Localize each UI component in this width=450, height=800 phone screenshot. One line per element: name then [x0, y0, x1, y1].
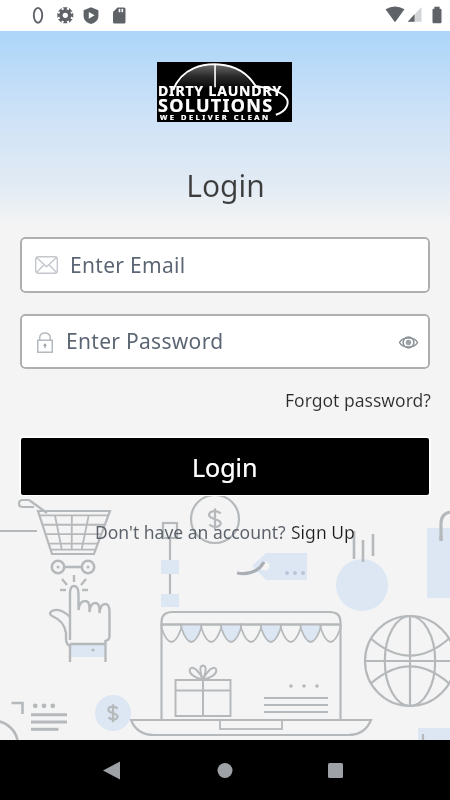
staticText: Login	[192, 450, 258, 484]
staticText: SOLUTIONS	[158, 93, 274, 118]
staticText: Enter Email	[70, 251, 186, 280]
button[interactable]: Show password	[386, 320, 430, 364]
staticText: DIRTY LAUNDRY	[158, 81, 283, 100]
staticText: Forgot password?	[285, 388, 431, 412]
button[interactable]: Enter Email	[20, 237, 430, 293]
button[interactable]: Enter Password	[20, 314, 430, 369]
staticText: Sign Up	[291, 520, 355, 544]
staticText: Enter Password	[66, 327, 386, 356]
button[interactable]: Sign Up	[291, 520, 355, 544]
staticText: WE DELIVER CLEAN	[160, 112, 271, 122]
staticText: Login	[186, 165, 265, 206]
button[interactable]: Login	[21, 438, 429, 495]
staticText: Don't have an account?	[95, 520, 291, 544]
button[interactable]: Forgot password?	[281, 384, 435, 416]
